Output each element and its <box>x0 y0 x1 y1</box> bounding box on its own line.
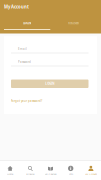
staticText: LOGIN <box>45 82 54 86</box>
button[interactable]: Home <box>0 161 20 180</box>
button[interactable]: REGISTER <box>50 21 97 30</box>
button[interactable]: Browse <box>20 161 40 180</box>
staticText: Info <box>69 172 73 176</box>
staticText: My Account <box>85 172 97 176</box>
staticText: Home <box>7 172 13 176</box>
button[interactable]: Info <box>61 161 81 180</box>
button[interactable]: Forgot your password? <box>11 99 42 103</box>
staticText: REGISTER <box>68 21 79 25</box>
staticText: My Account <box>4 4 29 10</box>
button[interactable]: My Account <box>81 161 101 180</box>
staticText: Password <box>18 60 31 64</box>
staticText: Forgot your password? <box>11 99 42 103</box>
button[interactable]: My Courses <box>40 161 61 180</box>
button[interactable]: LOGIN <box>11 79 88 88</box>
staticText: LOGIN <box>23 21 31 25</box>
staticText: My Courses <box>44 172 56 176</box>
staticText: Browse <box>26 172 34 176</box>
button[interactable]: LOGIN <box>4 21 50 30</box>
staticText: Email <box>18 47 27 51</box>
